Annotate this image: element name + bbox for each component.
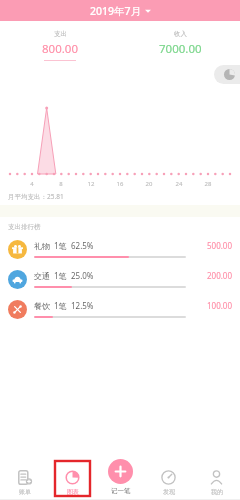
staticText: 礼物 [34,241,50,251]
button[interactable]: 图表 [62,462,83,500]
staticText: 24 [173,180,185,188]
staticText: 8 [55,180,67,188]
button[interactable]: 2019年7月 [82,1,159,21]
button[interactable]: 发现 [158,462,179,500]
staticText: 支出 [54,30,67,38]
staticText: 20 [143,180,155,188]
staticText: 交通 [34,271,50,281]
staticText: 12 [85,180,97,188]
staticText: 餐饮 [34,301,50,311]
staticText: 800.00 [42,41,78,57]
button[interactable]: Add record [105,459,136,500]
button[interactable]: Pie chart [214,65,240,84]
button[interactable]: 交通 [0,264,240,294]
staticText: 我的 [211,488,223,496]
staticText: 1笔 [54,240,67,251]
staticText: 4 [26,180,38,188]
staticText: 支出排行榜 [8,223,41,231]
staticText: 100.00 [192,300,232,311]
staticText: 账单 [19,488,31,496]
staticText: 2019年7月 [90,4,142,18]
staticText: 500.00 [192,240,232,251]
staticText: 12.5% [71,300,94,311]
staticText: 200.00 [192,270,232,281]
staticText: 记一笔 [111,487,131,495]
staticText: 62.5% [71,240,94,251]
other: Add record [108,459,133,484]
staticText: 发现 [163,488,175,496]
button[interactable]: 账单 [14,462,35,500]
button[interactable]: 餐饮 [0,294,240,324]
staticText: 16 [114,180,126,188]
staticText: 25.0% [71,270,94,281]
staticText: 1笔 [54,270,67,281]
button[interactable]: 我的 [206,462,227,500]
staticText: 1笔 [54,300,67,311]
button[interactable]: 礼物 [0,234,240,264]
staticText: 月平均支出：25.81 [8,192,64,201]
staticText: 图表 [67,488,79,496]
staticText: 7000.00 [159,41,202,57]
staticText: 28 [202,180,214,188]
staticText: 收入 [174,30,187,38]
